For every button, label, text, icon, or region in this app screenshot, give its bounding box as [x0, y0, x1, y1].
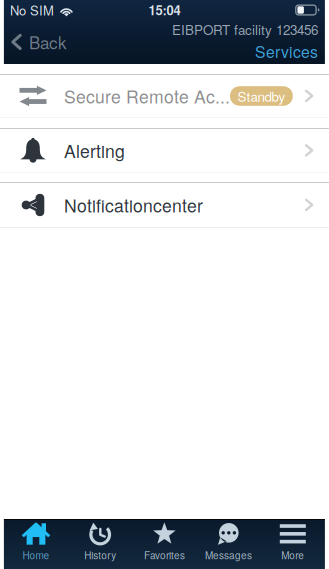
staticText: More: [281, 548, 304, 562]
button[interactable]: History: [68, 519, 132, 569]
button[interactable]: Secure Remote Ac...: [0, 75, 329, 117]
button[interactable]: Back: [4, 21, 77, 63]
button[interactable]: Alerting: [0, 129, 329, 172]
staticText: Standby: [237, 86, 285, 106]
staticText: Favorites: [144, 548, 185, 562]
staticText: Home: [22, 548, 49, 562]
staticText: Notificationcenter: [64, 192, 203, 218]
staticText: Alerting: [64, 138, 125, 163]
staticText: History: [84, 548, 116, 562]
staticText: Messages: [205, 548, 252, 562]
staticText: Secure Remote Ac...: [64, 83, 230, 109]
button[interactable]: Notificationcenter: [0, 183, 329, 227]
button[interactable]: Messages: [196, 519, 261, 569]
staticText: 15:04: [148, 1, 180, 19]
staticText: Services: [255, 40, 318, 62]
button[interactable]: More: [261, 519, 325, 569]
button[interactable]: Favorites: [132, 519, 196, 569]
button[interactable]: Home: [4, 519, 68, 569]
staticText: Back: [29, 30, 67, 54]
staticText: No SIM: [10, 1, 54, 19]
staticText: EIBPORT facility 123456: [172, 20, 318, 39]
